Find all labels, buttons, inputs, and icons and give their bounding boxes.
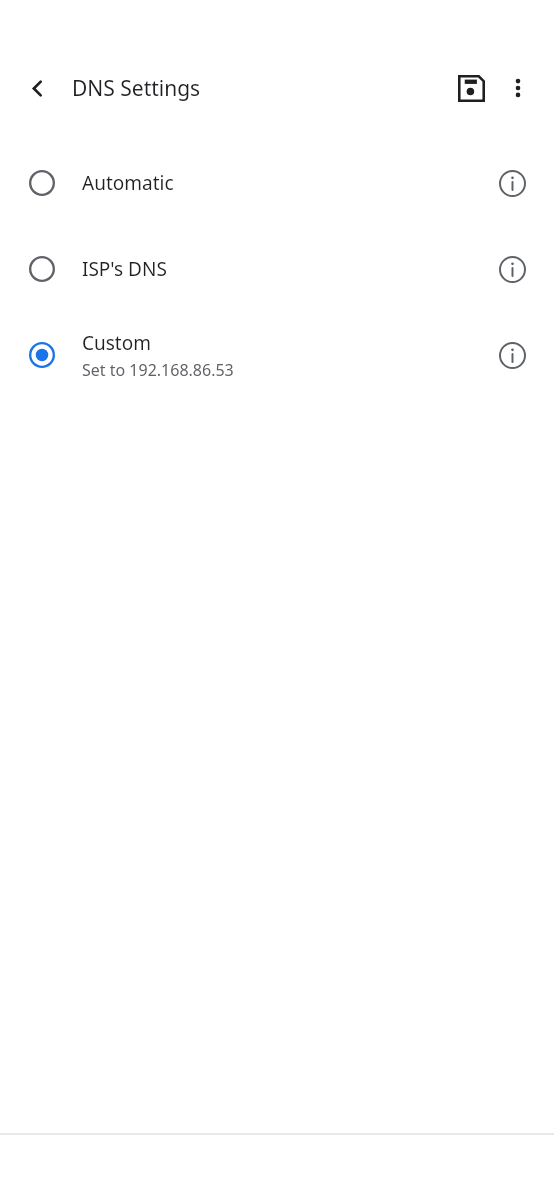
staticText: ISP's DNS [82,256,167,282]
button[interactable]: More options [494,64,542,112]
staticText: Automatic [82,170,174,196]
button[interactable]: Save [447,64,495,112]
staticText: DNS Settings [72,74,201,103]
button[interactable]: Info about Custom [488,331,536,379]
button[interactable]: Automatic [0,140,554,226]
button[interactable]: Info about ISP's DNS [488,245,536,293]
staticText: Set to 192.168.86.53 [82,359,234,381]
staticText: Custom [82,330,151,356]
button[interactable]: Info about Automatic [488,159,536,207]
button[interactable]: ISP's DNS [0,226,554,312]
button[interactable]: Custom [0,312,554,398]
button[interactable]: Back [13,64,61,112]
